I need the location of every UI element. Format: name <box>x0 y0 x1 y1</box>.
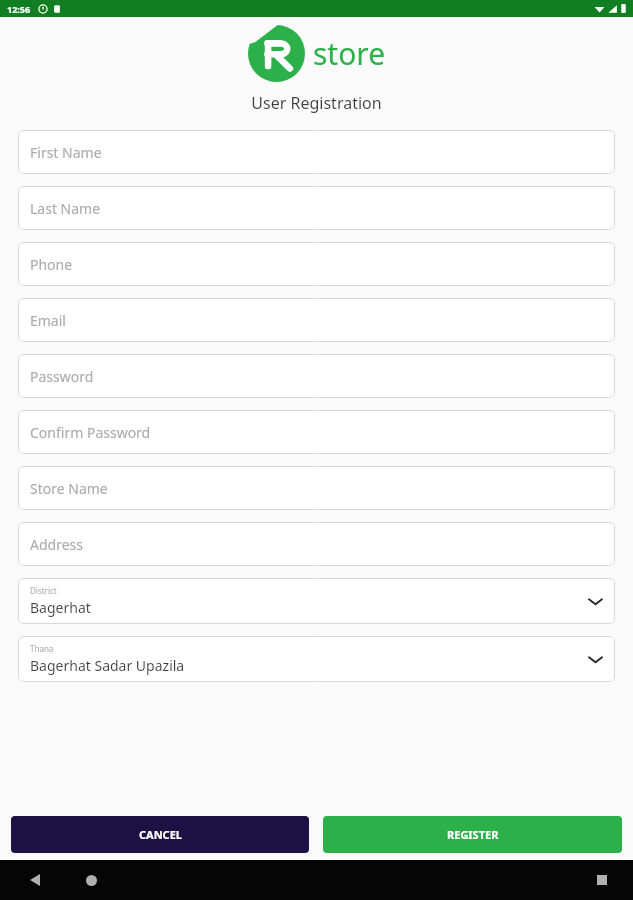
staticText: Store Name <box>30 479 108 498</box>
staticText: Phone <box>30 255 73 274</box>
button[interactable]: Confirm Password <box>18 410 615 454</box>
staticText: Email <box>30 311 66 330</box>
staticText: store <box>313 33 386 74</box>
staticText: REGISTER <box>447 827 499 842</box>
staticText: Last Name <box>30 199 101 218</box>
staticText: Bagerhat Sadar Upazila <box>30 656 185 675</box>
button[interactable]: Store Name <box>18 466 615 510</box>
other: Expand Thana <box>589 655 602 664</box>
button[interactable]: Home <box>78 867 104 893</box>
button[interactable]: Address <box>18 522 615 566</box>
button[interactable]: Password <box>18 354 615 398</box>
other: Expand District <box>589 597 602 606</box>
staticText: First Name <box>30 143 102 162</box>
staticText: CANCEL <box>139 827 182 842</box>
button[interactable]: First Name <box>18 130 615 174</box>
button[interactable]: Recent apps <box>589 867 615 893</box>
button[interactable]: Back <box>22 867 48 893</box>
button[interactable]: Last Name <box>18 186 615 230</box>
staticText: Thana <box>30 643 54 654</box>
staticText: Bagerhat <box>30 598 91 617</box>
staticText: Confirm Password <box>30 423 151 442</box>
button[interactable]: Email <box>18 298 615 342</box>
staticText: User Registration <box>0 92 633 114</box>
button[interactable]: Thana <box>18 636 615 682</box>
button[interactable]: Phone <box>18 242 615 286</box>
button[interactable]: CANCEL <box>11 816 309 853</box>
staticText: District <box>30 585 57 596</box>
staticText: Address <box>30 535 83 554</box>
staticText: Password <box>30 367 94 386</box>
button[interactable]: District <box>18 578 615 624</box>
staticText: 12:56 <box>7 3 31 15</box>
button[interactable]: REGISTER <box>323 816 622 853</box>
